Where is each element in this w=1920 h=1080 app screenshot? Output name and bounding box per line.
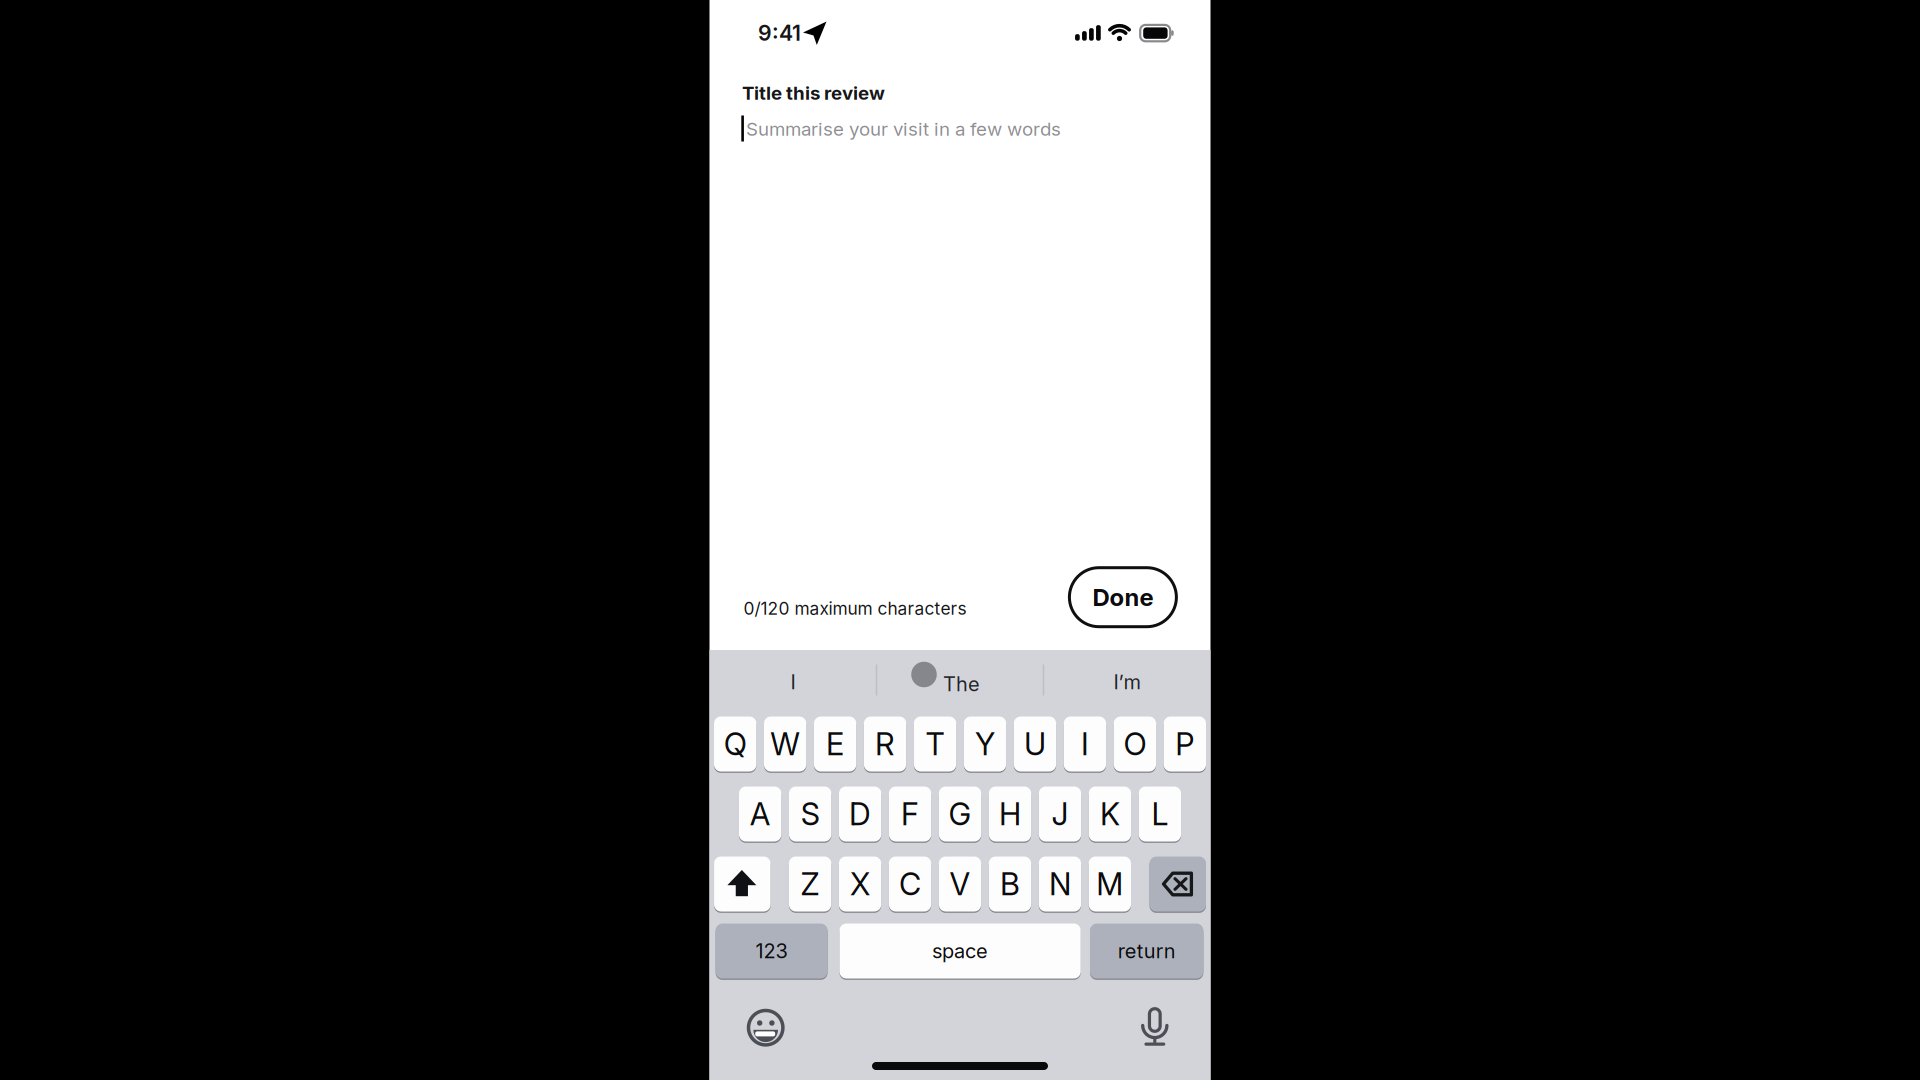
button[interactable]: Z — [789, 855, 831, 912]
staticText: K — [1100, 796, 1120, 832]
button[interactable]: L — [1139, 785, 1181, 842]
button[interactable]: T — [914, 715, 956, 772]
staticText: T — [925, 726, 944, 762]
staticText: N — [1049, 866, 1071, 902]
button[interactable]: I’m — [1047, 651, 1207, 713]
staticText: B — [1000, 866, 1020, 902]
staticText: X — [850, 866, 870, 902]
staticText: 9:41 — [758, 20, 801, 46]
button[interactable]: O — [1114, 715, 1156, 772]
button[interactable]: B — [989, 855, 1031, 912]
staticText: I — [790, 670, 795, 694]
button[interactable]: Y — [964, 715, 1006, 772]
button[interactable]: U — [1014, 715, 1056, 772]
button[interactable]: 123 — [716, 922, 828, 979]
staticText: W — [770, 726, 800, 762]
staticText: 0/120 maximum characters — [743, 598, 966, 619]
staticText: C — [899, 866, 921, 902]
staticText: H — [999, 796, 1021, 832]
staticText: Y — [975, 726, 995, 762]
button[interactable]: Dictate — [1130, 1005, 1179, 1054]
staticText: S — [801, 796, 820, 832]
staticText: return — [1118, 939, 1176, 963]
button[interactable]: K — [1089, 785, 1131, 842]
staticText: O — [1123, 726, 1146, 762]
button[interactable]: I — [713, 651, 873, 713]
staticText: M — [1096, 866, 1123, 902]
staticText: P — [1175, 726, 1194, 762]
button[interactable]: R — [864, 715, 906, 772]
staticText: 123 — [756, 939, 788, 963]
button[interactable]: W — [764, 715, 806, 772]
staticText: D — [849, 796, 871, 832]
button[interactable]: Emoji — [742, 1004, 790, 1052]
staticText: V — [949, 866, 970, 902]
button[interactable]: Shift — [714, 855, 770, 912]
staticText: Z — [801, 866, 820, 902]
staticText: G — [948, 796, 971, 832]
staticText: Title this review — [742, 82, 885, 104]
button[interactable]: S — [789, 785, 831, 842]
button[interactable]: Q — [714, 715, 756, 772]
button[interactable]: H — [989, 785, 1031, 842]
staticText: L — [1151, 796, 1168, 832]
staticText: J — [1051, 796, 1068, 832]
button[interactable]: return — [1090, 922, 1203, 979]
button[interactable]: Delete — [1149, 855, 1206, 912]
button[interactable]: C — [889, 855, 931, 912]
staticText: F — [901, 796, 919, 832]
button[interactable]: F — [889, 785, 931, 842]
staticText: A — [750, 796, 771, 832]
staticText: E — [826, 726, 844, 762]
button[interactable]: D — [839, 785, 881, 842]
staticText: Summarise your visit in a few words — [746, 118, 1061, 140]
button[interactable]: N — [1039, 855, 1081, 912]
button[interactable]: I — [1064, 715, 1106, 772]
button[interactable]: Done — [1068, 566, 1178, 628]
staticText: Done — [1092, 583, 1153, 611]
staticText: R — [875, 726, 895, 762]
staticText: space — [932, 939, 988, 963]
button[interactable]: G — [939, 785, 981, 842]
button[interactable]: P — [1164, 715, 1206, 772]
button[interactable]: E — [814, 715, 856, 772]
staticText: The — [943, 672, 980, 696]
staticText: I — [1081, 726, 1089, 762]
staticText: Q — [724, 726, 747, 762]
button[interactable]: space — [839, 922, 1081, 979]
button[interactable]: J — [1039, 785, 1081, 842]
button[interactable]: The — [876, 649, 1043, 713]
staticText: U — [1024, 726, 1046, 762]
button[interactable]: V — [939, 855, 981, 912]
button[interactable]: X — [839, 855, 881, 912]
staticText: I’m — [1113, 670, 1140, 694]
button[interactable]: M — [1089, 855, 1131, 912]
button[interactable]: A — [739, 785, 781, 842]
